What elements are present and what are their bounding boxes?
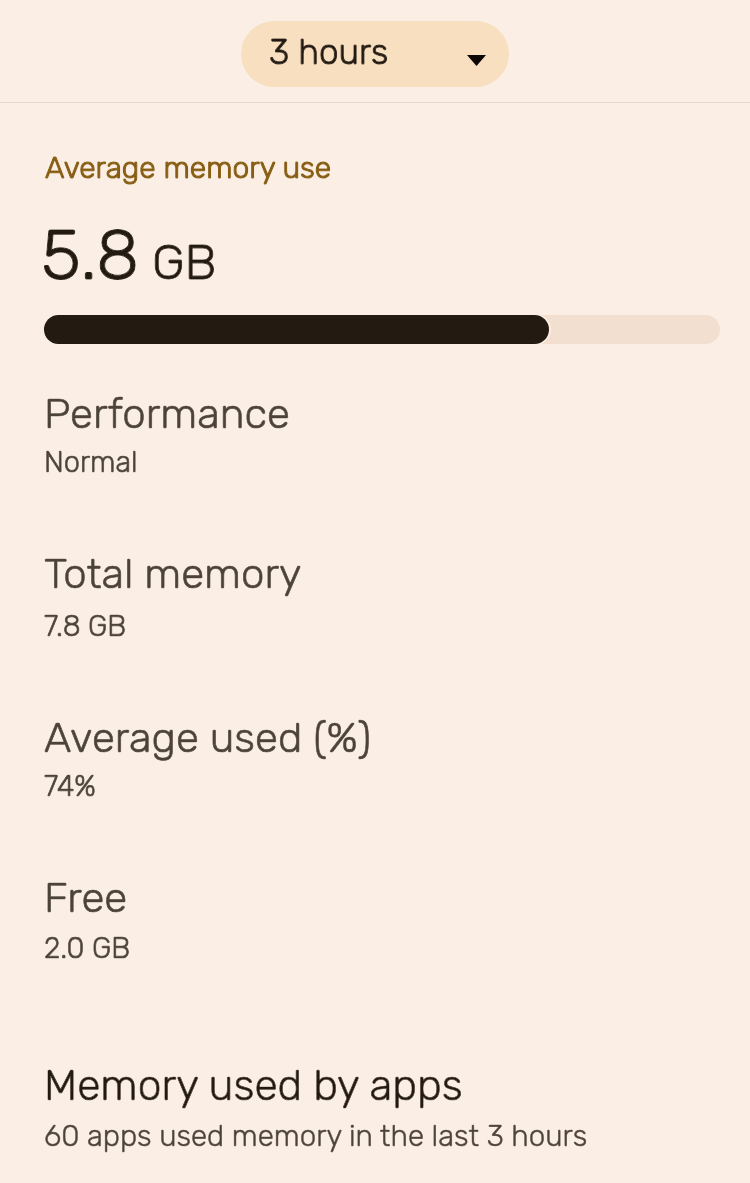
staticText: 60 apps used memory in the last 3 hours [44, 1118, 588, 1153]
button[interactable]: Memory used by apps [0, 1045, 750, 1183]
staticText: Free [44, 873, 128, 923]
staticText: 7.8 GB [44, 609, 127, 643]
other: Memory use: 74 percent [44, 315, 720, 344]
staticText: 60 apps used memory in the last 3 hours [44, 1118, 588, 1153]
button[interactable]: Free [0, 865, 750, 1010]
staticText: Average memory use [45, 150, 332, 186]
staticText: Normal [44, 445, 138, 479]
staticText: GB [152, 233, 217, 291]
other: Change time range [467, 55, 486, 66]
staticText: Memory used by apps [44, 1060, 463, 1110]
staticText: 2.0 GB [44, 931, 131, 965]
staticText: GB [152, 233, 217, 291]
staticText: Total memory [44, 549, 302, 599]
staticText: Normal [44, 445, 138, 479]
staticText: 3 hours [269, 31, 389, 72]
staticText: 74% [44, 769, 96, 803]
staticText: Performance [44, 389, 290, 439]
staticText: 3 hours [269, 31, 389, 72]
staticText: Free [44, 873, 128, 923]
button[interactable]: Total memory [0, 542, 750, 687]
button[interactable]: 3 hours [241, 21, 509, 87]
staticText: Average used (%) [44, 713, 372, 763]
staticText: Performance [44, 389, 290, 439]
staticText: Average memory use [45, 150, 332, 186]
staticText: 5.8 [41, 214, 140, 297]
button[interactable]: Performance [0, 381, 750, 526]
staticText: Average used (%) [44, 713, 372, 763]
staticText: Memory used by apps [44, 1060, 463, 1110]
button[interactable]: Average used (%) [0, 704, 750, 849]
staticText: 5.8 [41, 214, 140, 297]
staticText: 2.0 GB [44, 931, 131, 965]
staticText: 7.8 GB [44, 609, 127, 643]
staticText: 74% [44, 769, 96, 803]
staticText: Total memory [44, 549, 302, 599]
